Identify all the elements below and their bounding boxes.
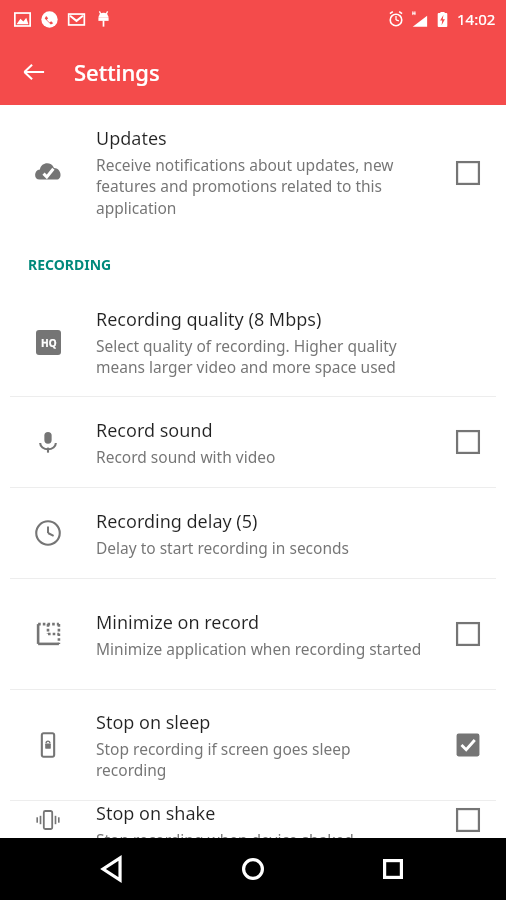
- button[interactable]: Back: [12, 50, 56, 94]
- button[interactable]: Home: [226, 842, 280, 896]
- button[interactable]: Record sound: [0, 397, 506, 487]
- staticText: Minimize application when recording star…: [96, 638, 422, 659]
- staticText: Settings: [74, 57, 160, 87]
- button[interactable]: Stop on sleep: [0, 690, 506, 800]
- staticText: Select quality of recording. Higher qual…: [96, 335, 422, 378]
- button[interactable]: Recording delay (5): [0, 488, 506, 578]
- staticText: Stop recording if screen goes sleep reco…: [96, 738, 422, 781]
- button[interactable]: Unchecked: [446, 801, 490, 838]
- button[interactable]: Back: [86, 842, 140, 896]
- button[interactable]: Unchecked: [446, 612, 490, 656]
- button[interactable]: Unchecked: [446, 151, 490, 195]
- staticText: Stop on shake: [96, 801, 216, 826]
- staticText: Record sound: [96, 418, 213, 443]
- staticText: Record sound with video: [96, 446, 276, 467]
- button[interactable]: Unchecked: [446, 420, 490, 464]
- staticText: Recording quality (8 Mbps): [96, 307, 322, 332]
- button[interactable]: Stop on shake: [0, 801, 506, 838]
- button[interactable]: Minimize on record: [0, 579, 506, 689]
- staticText: Updates: [96, 126, 167, 151]
- button[interactable]: HQ: [0, 288, 506, 396]
- staticText: Receive notifications about updates, new…: [96, 154, 422, 219]
- staticText: RECORDING: [28, 255, 112, 274]
- staticText: 14:02: [457, 9, 496, 29]
- staticText: Stop recording when device shaked: [96, 829, 354, 838]
- button[interactable]: Recents: [366, 842, 420, 896]
- staticText: Delay to start recording in seconds: [96, 537, 349, 558]
- staticText: Minimize on record: [96, 610, 260, 635]
- staticText: Recording delay (5): [96, 509, 258, 534]
- staticText: HQ: [41, 336, 57, 350]
- button[interactable]: Checked: [446, 723, 490, 767]
- button[interactable]: Updates: [0, 105, 506, 240]
- staticText: Stop on sleep: [96, 710, 211, 735]
